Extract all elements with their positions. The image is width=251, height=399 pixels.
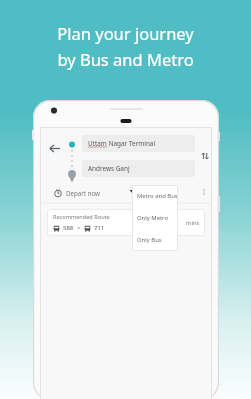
staticText: Recommended Route [53, 213, 110, 221]
staticText: mins [186, 219, 200, 227]
staticText: 711 [94, 224, 105, 232]
staticText: Depart now [66, 189, 100, 197]
staticText: > [77, 224, 81, 232]
staticText: Uttam [88, 139, 107, 148]
button[interactable]: Only Bus [132, 229, 178, 251]
button[interactable]: Andrews Ganj [82, 160, 195, 177]
button[interactable]: Depart now [54, 184, 204, 202]
staticText: Metro and Bus [137, 192, 178, 200]
button[interactable]: Metro and Bus [132, 185, 178, 207]
staticText: Nagar Terminal [107, 139, 156, 148]
button[interactable]: Only Metro [132, 207, 178, 229]
button[interactable]: Filter transport mode [124, 184, 142, 202]
staticText: 588 [63, 224, 74, 232]
button[interactable]: Back [44, 138, 64, 158]
button[interactable]: More options [196, 184, 212, 200]
staticText: Only Metro [137, 214, 168, 222]
button[interactable]: Recommended Route [47, 209, 205, 236]
staticText: Plan your journey [57, 22, 194, 44]
button[interactable]: Uttam [82, 135, 195, 152]
staticText: Andrews Ganj [88, 164, 130, 173]
staticText: by Bus and Metro [57, 48, 194, 70]
staticText: Only Bus [137, 236, 162, 244]
button[interactable]: Swap origin and destination [198, 149, 212, 163]
